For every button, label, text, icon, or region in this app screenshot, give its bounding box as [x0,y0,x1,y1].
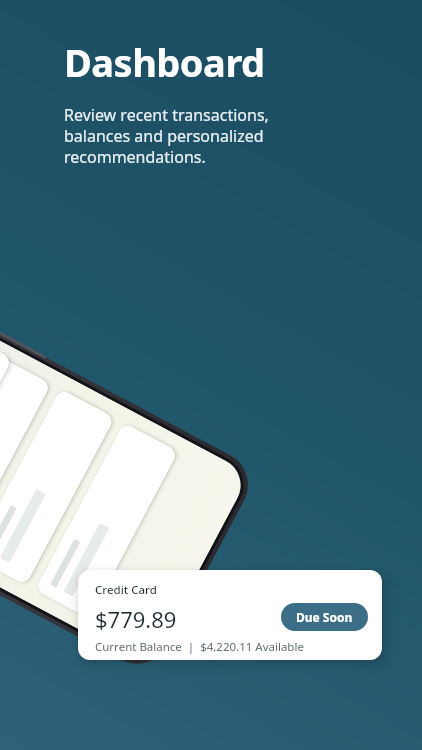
staticText: Review recent transactions, balances and… [64,104,269,168]
button[interactable] [0,355,51,552]
button[interactable]: More options [0,348,13,396]
staticText: Current Balance | $4,220.11 Available [95,639,304,655]
staticText: $779.89 [95,604,177,634]
staticText: Credit Card [95,582,157,598]
staticText: Dashboard [64,36,265,88]
button[interactable] [0,388,115,585]
button[interactable] [35,422,178,619]
staticText: Due Soon [296,609,353,625]
button[interactable]: Credit Card [78,570,382,660]
button[interactable]: Due Soon [281,603,368,631]
